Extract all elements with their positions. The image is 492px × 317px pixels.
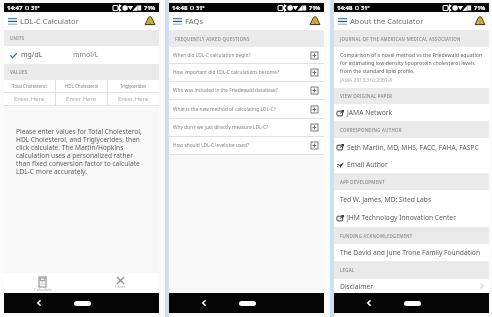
button[interactable]: Enter Here (56, 93, 107, 105)
staticText: What is the new method of calculating LD… (173, 106, 311, 113)
staticText: 31° (31, 4, 40, 11)
staticText: About the Calculator (350, 16, 424, 26)
staticText: mmol/L (73, 50, 99, 60)
button[interactable]: Why don't we just directly measure LDL-C… (169, 119, 324, 136)
button[interactable]: Home (230, 293, 264, 313)
staticText: Total Cholesterol (12, 83, 47, 89)
staticText: Ted W. James, MD: Sited Labs (340, 195, 432, 204)
staticText: How important did LDL-C calculations bec… (173, 69, 311, 76)
button[interactable]: Warning (144, 15, 156, 27)
staticText: The David and June Trone Family Foundati… (340, 248, 481, 257)
staticText: Comparison of a novel method vs the Frie… (340, 51, 486, 74)
button[interactable]: JAMA Network (334, 104, 489, 121)
staticText: JAMA Network (347, 108, 393, 117)
staticText: Please enter values for Total Cholestero… (16, 127, 142, 176)
staticText: Enter Here (118, 95, 149, 103)
staticText: FAQs (185, 16, 204, 26)
staticText: 31° (196, 4, 205, 11)
staticText: LEGAL (340, 267, 355, 273)
staticText: Enter Here (14, 95, 45, 103)
staticText: FUNDING ACKNOWLEDGEMENT (340, 233, 413, 239)
staticText: Enter Here (66, 95, 97, 103)
staticText: LDL-C Calculator (20, 16, 79, 26)
staticText: Calculate (34, 287, 52, 293)
staticText: Who was included in the Friedewald datab… (173, 87, 311, 94)
staticText: Triglycerides (120, 83, 147, 89)
staticText: 71% (144, 4, 156, 11)
button[interactable]: Back (334, 293, 404, 313)
staticText: 71% (309, 4, 321, 11)
button[interactable]: Enter Here (4, 93, 55, 105)
button[interactable]: Email Author (334, 156, 489, 173)
button[interactable]: Disclaimer (334, 279, 489, 293)
staticText: JOURNAL OF THE AMERICAN MEDICAL ASSOCIAT… (340, 36, 461, 42)
staticText: Seth Martin, MD, MHS, FACC, FAHA, FASPC (347, 143, 479, 152)
button[interactable]: Open navigation menu (171, 15, 183, 27)
staticText: VIEW ORIGINAL PAPER (340, 93, 393, 99)
staticText: 14:48 (172, 4, 188, 12)
button[interactable]: mmol/L (73, 46, 159, 64)
staticText: CORRESPONDING AUTHOR (340, 127, 402, 133)
button[interactable]: Warning (474, 15, 486, 27)
staticText: mg/dL (21, 50, 43, 60)
staticText: FREQUENTLY ASKED QUESTIONS (175, 36, 250, 42)
button[interactable]: Ted W. James, MD: Sited Labs (334, 190, 489, 208)
staticText: APP DEVELOPMENT (340, 179, 385, 185)
button[interactable]: Open navigation menu (6, 15, 18, 27)
staticText: 14:48 (337, 4, 353, 12)
button[interactable]: Who was included in the Friedewald datab… (169, 82, 324, 99)
button[interactable]: Home (395, 293, 429, 313)
button[interactable]: When did LDL-C calculation begin? (169, 47, 324, 63)
staticText: Clear (115, 284, 126, 290)
staticText: Why don't we just directly measure LDL-C… (173, 124, 311, 131)
button[interactable]: Enter Here (108, 93, 159, 105)
button[interactable]: Seth Martin, MD, MHS, FACC, FAHA, FASPC (334, 138, 489, 156)
button[interactable]: Back (4, 293, 74, 313)
staticText: 71% (474, 4, 486, 11)
staticText: Email Author (347, 160, 388, 169)
staticText: VALUES (10, 69, 28, 75)
staticText: Disclaimer (340, 282, 480, 291)
staticText: UNITS (10, 35, 25, 41)
button[interactable]: JHM Technology Innovation Center (334, 208, 489, 227)
button[interactable]: Home (65, 293, 99, 313)
button[interactable]: Warning (309, 15, 321, 27)
button[interactable]: Back (169, 293, 239, 313)
staticText: How should LDL-C levels be used? (173, 142, 311, 149)
button[interactable]: Clear (81, 273, 159, 293)
button[interactable]: mg/dL (4, 46, 73, 64)
button[interactable]: How important did LDL-C calculations bec… (169, 64, 324, 81)
staticText: 14:47 (7, 4, 23, 12)
staticText: When did LDL-C calculation begin? (173, 52, 311, 59)
staticText: 31° (361, 4, 370, 11)
staticText: JAMA 2013;310:2061-8 (340, 77, 393, 84)
button[interactable]: The David and June Trone Family Foundati… (334, 244, 489, 261)
button[interactable]: What is the new method of calculating LD… (169, 100, 324, 118)
button[interactable]: Open navigation menu (336, 15, 348, 27)
button[interactable]: How should LDL-C levels be used? (169, 137, 324, 154)
button[interactable]: Calculate (4, 273, 81, 293)
staticText: JHM Technology Innovation Center (347, 213, 456, 222)
staticText: HDL Cholesterol (65, 83, 99, 89)
